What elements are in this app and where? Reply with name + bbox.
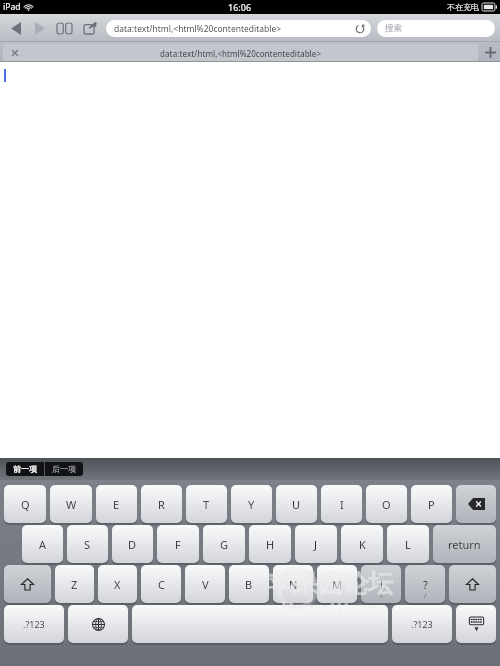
staticText: V [202, 577, 209, 592]
button[interactable]: E [96, 485, 137, 523]
button[interactable]: Shift [4, 565, 51, 603]
button[interactable]: X [98, 565, 137, 603]
button[interactable]: Z [55, 565, 94, 603]
button[interactable]: Change keyboard [68, 605, 128, 643]
staticText: H [266, 537, 275, 552]
staticText: / [424, 591, 427, 601]
staticText: data:text/html,<html%20contenteditable> [160, 48, 321, 59]
staticText: K [359, 537, 366, 552]
staticText: W [66, 497, 77, 512]
button[interactable]: Space [132, 605, 388, 643]
button[interactable]: D [112, 525, 153, 563]
staticText: J [314, 537, 318, 552]
staticText: Y [248, 497, 255, 512]
staticText: B [245, 577, 253, 592]
button[interactable]: Share [79, 17, 101, 39]
button[interactable]: M [317, 565, 357, 603]
button[interactable]: P [411, 485, 452, 523]
staticText: L [405, 537, 411, 552]
button[interactable]: Backspace [456, 485, 496, 523]
button[interactable]: A [22, 525, 63, 563]
button[interactable]: Shift [449, 565, 496, 603]
staticText: A [39, 537, 47, 552]
staticText: return [448, 537, 481, 552]
button[interactable]: return [433, 525, 496, 563]
staticText: 不在充电 [447, 2, 479, 12]
button[interactable]: R [141, 485, 182, 523]
button[interactable]: data:text/html,<html%20contenteditable> [3, 44, 478, 62]
button[interactable]: L [387, 525, 429, 563]
button[interactable]: G [203, 525, 245, 563]
staticText: Z [71, 577, 78, 592]
button[interactable]: Forward [30, 17, 50, 39]
staticText: D [128, 537, 137, 552]
button[interactable]: Reload [353, 22, 366, 35]
staticText: S [84, 537, 91, 552]
button[interactable]: O [366, 485, 407, 523]
button[interactable]: Y [231, 485, 272, 523]
button[interactable]: ! [361, 565, 401, 603]
staticText: .?123 [23, 618, 45, 630]
staticText: 1 [379, 591, 384, 601]
button[interactable]: New tab [480, 42, 500, 62]
staticText: R [158, 497, 165, 512]
button[interactable]: 搜索 [377, 20, 495, 37]
button[interactable]: H [249, 525, 291, 563]
button[interactable]: N [273, 565, 313, 603]
staticText: M [332, 577, 342, 592]
staticText: O [382, 497, 391, 512]
button[interactable]: U [276, 485, 317, 523]
button[interactable]: W [50, 485, 92, 523]
button[interactable]: F [157, 525, 199, 563]
button[interactable]: C [141, 565, 181, 603]
staticText: 16:06 [228, 1, 252, 13]
button[interactable]: ? [405, 565, 445, 603]
button[interactable]: 前一项 [13, 462, 37, 476]
staticText: ! [380, 577, 383, 592]
button[interactable]: S [67, 525, 108, 563]
staticText: data:text/html,<html%20contenteditable> [114, 23, 282, 35]
staticText: 搜索 [385, 23, 402, 34]
button[interactable]: .?123 [4, 605, 64, 643]
staticText: 苹果园论坛 [268, 568, 393, 599]
button[interactable]: B [229, 565, 269, 603]
staticText: bbs.app111.com [282, 599, 379, 615]
staticText: N [289, 577, 298, 592]
staticText: ? [423, 577, 428, 592]
staticText: C [158, 577, 165, 592]
button[interactable]: Back [6, 17, 26, 39]
button[interactable]: .?123 [392, 605, 452, 643]
staticText: U [292, 497, 301, 512]
staticText: P [428, 497, 435, 512]
staticText: 后一项 [52, 464, 76, 474]
button[interactable]: I [321, 485, 362, 523]
button[interactable]: Bookmarks [53, 17, 75, 39]
staticText: 前一项 [13, 464, 37, 474]
staticText: I [340, 497, 344, 512]
button[interactable]: Q [4, 485, 46, 523]
staticText: X [114, 577, 121, 592]
staticText: .?123 [411, 618, 433, 630]
button[interactable]: Close tab [9, 47, 21, 59]
staticText: F [175, 537, 181, 552]
button[interactable]: K [341, 525, 383, 563]
button[interactable]: Hide keyboard [456, 605, 496, 643]
staticText: iPad [3, 1, 21, 13]
staticText: Q [21, 497, 30, 512]
button[interactable]: data:text/html,<html%20contenteditable> [106, 20, 371, 37]
button[interactable]: 后一项 [52, 462, 76, 476]
button[interactable]: J [295, 525, 337, 563]
staticText: E [113, 497, 120, 512]
button[interactable]: T [186, 485, 227, 523]
staticText: G [220, 537, 229, 552]
button[interactable]: V [185, 565, 225, 603]
staticText: T [203, 497, 210, 512]
